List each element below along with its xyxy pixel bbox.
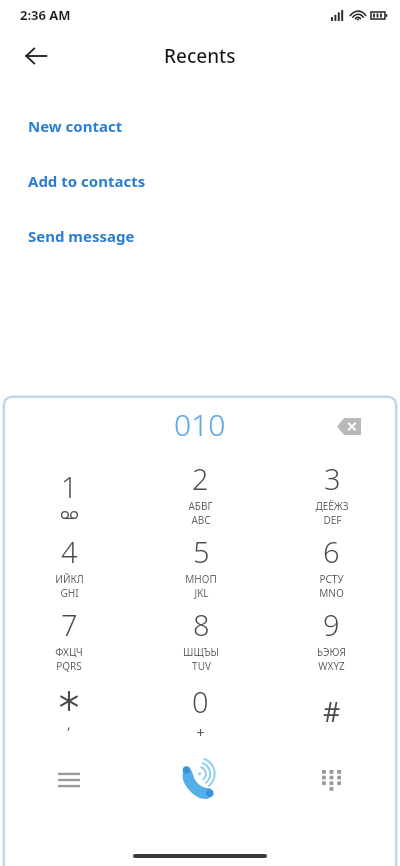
button[interactable]: 9 [266,602,397,675]
staticText: 8 [193,605,210,644]
button[interactable]: Dialpad [266,748,397,812]
staticText: New contact [28,116,123,136]
button[interactable]: ‚ [3,675,135,748]
staticText: ШЩЪЫ [183,645,219,659]
staticText: 5 [193,532,210,571]
button[interactable]: Add to contacts [0,153,400,208]
staticText: Send message [28,226,135,246]
staticText: 2:36 AM [20,6,71,24]
button[interactable]: 8 [135,602,266,675]
staticText: ДЕЁЖЗ [315,499,349,513]
staticText: DEF [323,513,342,527]
staticText: 9 [323,605,340,644]
staticText: # [323,693,341,730]
staticText: Recents [164,43,236,69]
staticText: 010 [174,404,226,445]
button[interactable]: 0 [135,675,266,748]
staticText: ФХЦЧ [55,645,83,659]
staticText: ИЙКЛ [55,572,84,586]
staticText: МНОП [185,572,217,586]
button[interactable]: 2 [135,456,266,529]
button[interactable]: Back [12,32,60,80]
staticText: GHI [60,586,79,600]
staticText: 3 [324,459,341,498]
staticText: РСТУ [319,572,344,586]
button[interactable]: Send message [0,208,400,263]
staticText: TUV [192,659,211,673]
staticText: 6 [323,532,340,571]
staticText: 2 [192,459,209,498]
staticText: MNO [319,586,344,600]
staticText: ABC [191,513,211,527]
staticText: 1 [61,467,78,506]
button[interactable]: 5 [135,529,266,602]
staticText: JKL [194,586,209,600]
button[interactable]: 3 [266,456,397,529]
staticText: Add to contacts [28,171,146,191]
button[interactable]: 1 [3,456,135,529]
button[interactable]: 7 [3,602,135,675]
button[interactable]: 6 [266,529,397,602]
staticText: + [196,722,205,742]
staticText: 4 [61,532,78,571]
button[interactable]: Menu [3,748,135,812]
button[interactable]: Call [135,748,266,812]
staticText: WXYZ [318,659,345,673]
staticText: PQRS [56,659,82,673]
staticText: АБВГ [188,499,213,513]
button[interactable]: 4 [3,529,135,602]
staticText: 0 [192,682,209,721]
button[interactable]: # [266,675,397,748]
staticText: ‚ [67,713,71,733]
staticText: 7 [61,605,78,644]
button[interactable]: New contact [0,98,400,153]
staticText: ЬЭЮЯ [317,645,346,659]
button[interactable]: Backspace [327,404,371,448]
